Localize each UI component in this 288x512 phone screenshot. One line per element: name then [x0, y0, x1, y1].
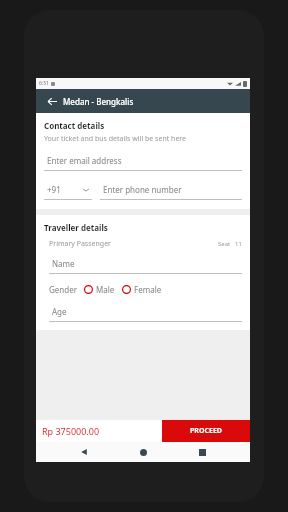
button[interactable]: Name — [49, 258, 242, 274]
staticText: Rp 375000.00 — [42, 425, 100, 437]
button[interactable]: Enter phone number — [100, 184, 242, 200]
staticText: Contact details — [44, 120, 105, 131]
staticText: Medan - Bengkalis — [63, 96, 134, 107]
staticText: Male — [96, 284, 115, 295]
staticText: Gender — [49, 284, 78, 295]
button[interactable]: Home — [132, 442, 154, 462]
button[interactable]: Recents — [191, 442, 213, 462]
staticText: Traveller details — [44, 222, 108, 233]
staticText: Age — [52, 306, 67, 317]
staticText: Seat — [218, 240, 231, 248]
staticText: Primary Passenger — [49, 239, 111, 249]
staticText: Your ticket and bus details will be sent… — [44, 134, 187, 144]
button[interactable]: Back — [44, 93, 60, 109]
button[interactable]: PROCEED — [162, 420, 250, 442]
button[interactable]: Back — [73, 442, 95, 462]
staticText: Enter email address — [47, 155, 122, 166]
button[interactable]: +91 — [44, 184, 92, 200]
staticText: +91 — [47, 184, 61, 195]
button[interactable]: Age — [49, 306, 242, 322]
button[interactable]: Female — [122, 284, 162, 295]
button[interactable]: Enter email address — [44, 155, 242, 171]
staticText: 6:51 — [39, 80, 49, 87]
staticText: PROCEED — [190, 426, 222, 436]
staticText: Female — [134, 284, 162, 295]
staticText: 11 — [235, 240, 242, 248]
staticText: Name — [52, 258, 75, 269]
staticText: Enter phone number — [103, 184, 182, 195]
button[interactable]: Male — [84, 284, 115, 295]
